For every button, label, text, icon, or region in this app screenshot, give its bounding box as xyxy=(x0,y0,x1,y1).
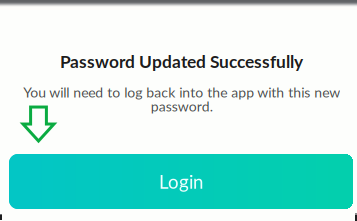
staticText: Password Updated Successfully xyxy=(60,51,303,72)
button[interactable]: Login xyxy=(9,154,353,209)
staticText: Login xyxy=(159,170,203,193)
staticText: You will need to log back into the app w… xyxy=(23,84,340,114)
